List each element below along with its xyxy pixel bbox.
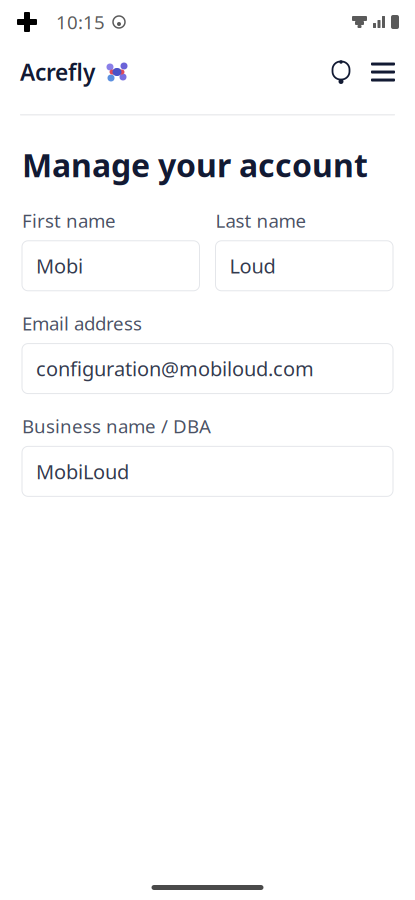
staticText: Loud (229, 252, 275, 279)
staticText: Acrefly (20, 57, 95, 87)
button[interactable]: Menu (353, 62, 395, 82)
staticText: Business name / DBA (22, 414, 211, 438)
staticText: Mobi (36, 252, 83, 279)
staticText: 10:15 (56, 10, 105, 34)
button[interactable]: Notifications (329, 59, 353, 85)
staticText: configuration@mobiloud.com (36, 355, 314, 382)
staticText: First name (22, 208, 116, 233)
staticText: Manage your account (22, 143, 368, 186)
staticText: Last name (215, 208, 306, 233)
staticText: Email address (22, 311, 142, 336)
staticText: MobiLoud (36, 458, 129, 485)
button[interactable]: Acrefly home (20, 57, 133, 87)
